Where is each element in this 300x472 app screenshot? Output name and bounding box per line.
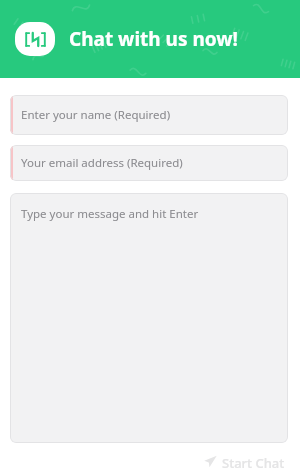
staticText: Your email address (Required) — [21, 155, 183, 171]
button[interactable]: Enter your name (Required) — [10, 95, 288, 135]
button[interactable]: Start Chat — [201, 450, 288, 472]
staticText: Chat with us now! — [69, 26, 238, 52]
staticText: Start Chat — [222, 454, 285, 468]
button[interactable]: Chat logo — [15, 22, 55, 56]
staticText: Type your message and hit Enter — [21, 206, 199, 222]
staticText: Enter your name (Required) — [21, 107, 171, 123]
button[interactable]: Type your message and hit Enter — [10, 193, 288, 443]
button[interactable]: Your email address (Required) — [10, 145, 288, 181]
